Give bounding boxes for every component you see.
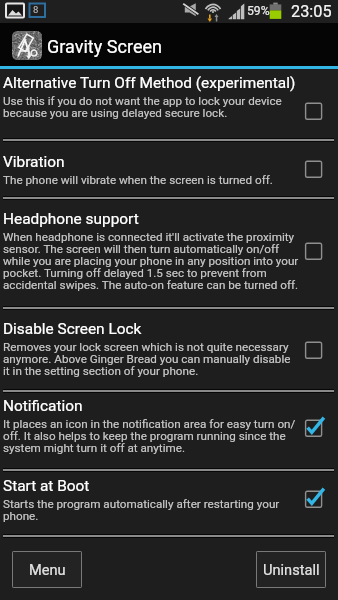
staticText: Disable Screen Lock (3, 320, 142, 338)
button[interactable]: Alternative Turn Off Method (experimenta… (0, 69, 338, 138)
staticText: 59% (247, 4, 270, 18)
staticText: Notification (3, 397, 83, 415)
button[interactable]: Headphone support (0, 200, 338, 306)
button[interactable]: Menu (12, 551, 82, 588)
staticText: When headphone is connected it'll activa… (3, 231, 300, 291)
button[interactable]: Start at Boot (0, 472, 338, 534)
staticText: Uninstall (263, 561, 320, 578)
button[interactable]: Notification (0, 393, 338, 468)
staticText: Start at Boot (3, 477, 90, 495)
staticText: Vibration (3, 153, 65, 171)
staticText: Gravity Screen (47, 36, 163, 57)
button[interactable]: Disable Screen Lock (0, 310, 338, 389)
staticText: Starts the program automatically after r… (3, 498, 300, 522)
staticText: 23:05 (291, 2, 332, 21)
staticText: It places an icon in the notification ar… (3, 418, 300, 454)
button[interactable]: Uninstall (256, 551, 326, 588)
staticText: Alternative Turn Off Method (experimenta… (3, 74, 296, 92)
staticText: Use this if you do not want the app to l… (3, 95, 300, 119)
staticText: 8 (33, 4, 39, 15)
staticText: The phone will vibrate when the screen i… (3, 174, 273, 186)
staticText: Removes your lock screen which is not qu… (3, 341, 300, 377)
staticText: Headphone support (3, 210, 139, 228)
button[interactable]: Vibration (0, 142, 338, 196)
staticText: Menu (29, 561, 66, 578)
